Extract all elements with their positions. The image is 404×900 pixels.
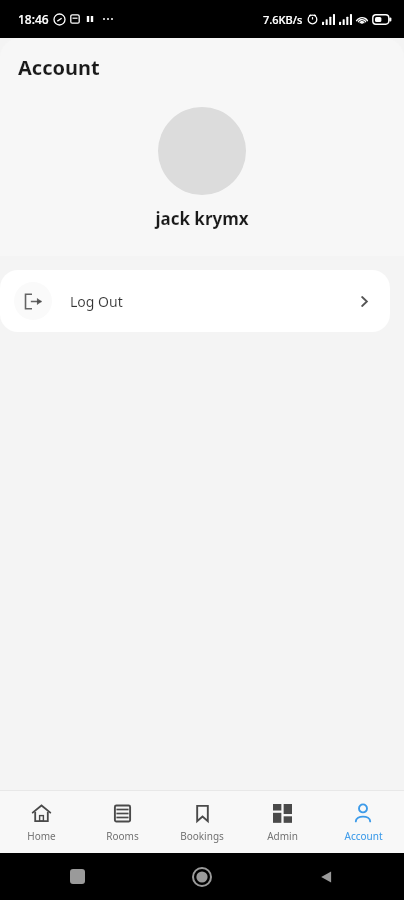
staticText: Account xyxy=(344,829,383,843)
button[interactable]: Recent apps xyxy=(70,869,85,884)
button[interactable]: Back xyxy=(318,869,334,885)
button[interactable]: Log Out xyxy=(0,270,390,332)
button[interactable]: Rooms xyxy=(83,796,161,849)
staticText: Log Out xyxy=(70,292,123,311)
button[interactable]: Profile picture xyxy=(158,107,246,195)
staticText: Bookings xyxy=(180,829,224,843)
staticText: Admin xyxy=(267,829,298,843)
button[interactable]: Admin xyxy=(243,796,321,849)
button[interactable]: Bookings xyxy=(163,796,241,849)
staticText: Account xyxy=(18,54,100,81)
staticText: 18:46 xyxy=(18,11,49,27)
staticText: 7.6KB/s xyxy=(263,12,303,27)
button[interactable]: Home xyxy=(2,796,80,849)
staticText: Rooms xyxy=(106,829,139,843)
button[interactable]: Account xyxy=(324,796,402,849)
button[interactable]: Home xyxy=(192,867,212,887)
staticText: jack krymx xyxy=(16,207,388,230)
staticText: Home xyxy=(27,829,56,843)
